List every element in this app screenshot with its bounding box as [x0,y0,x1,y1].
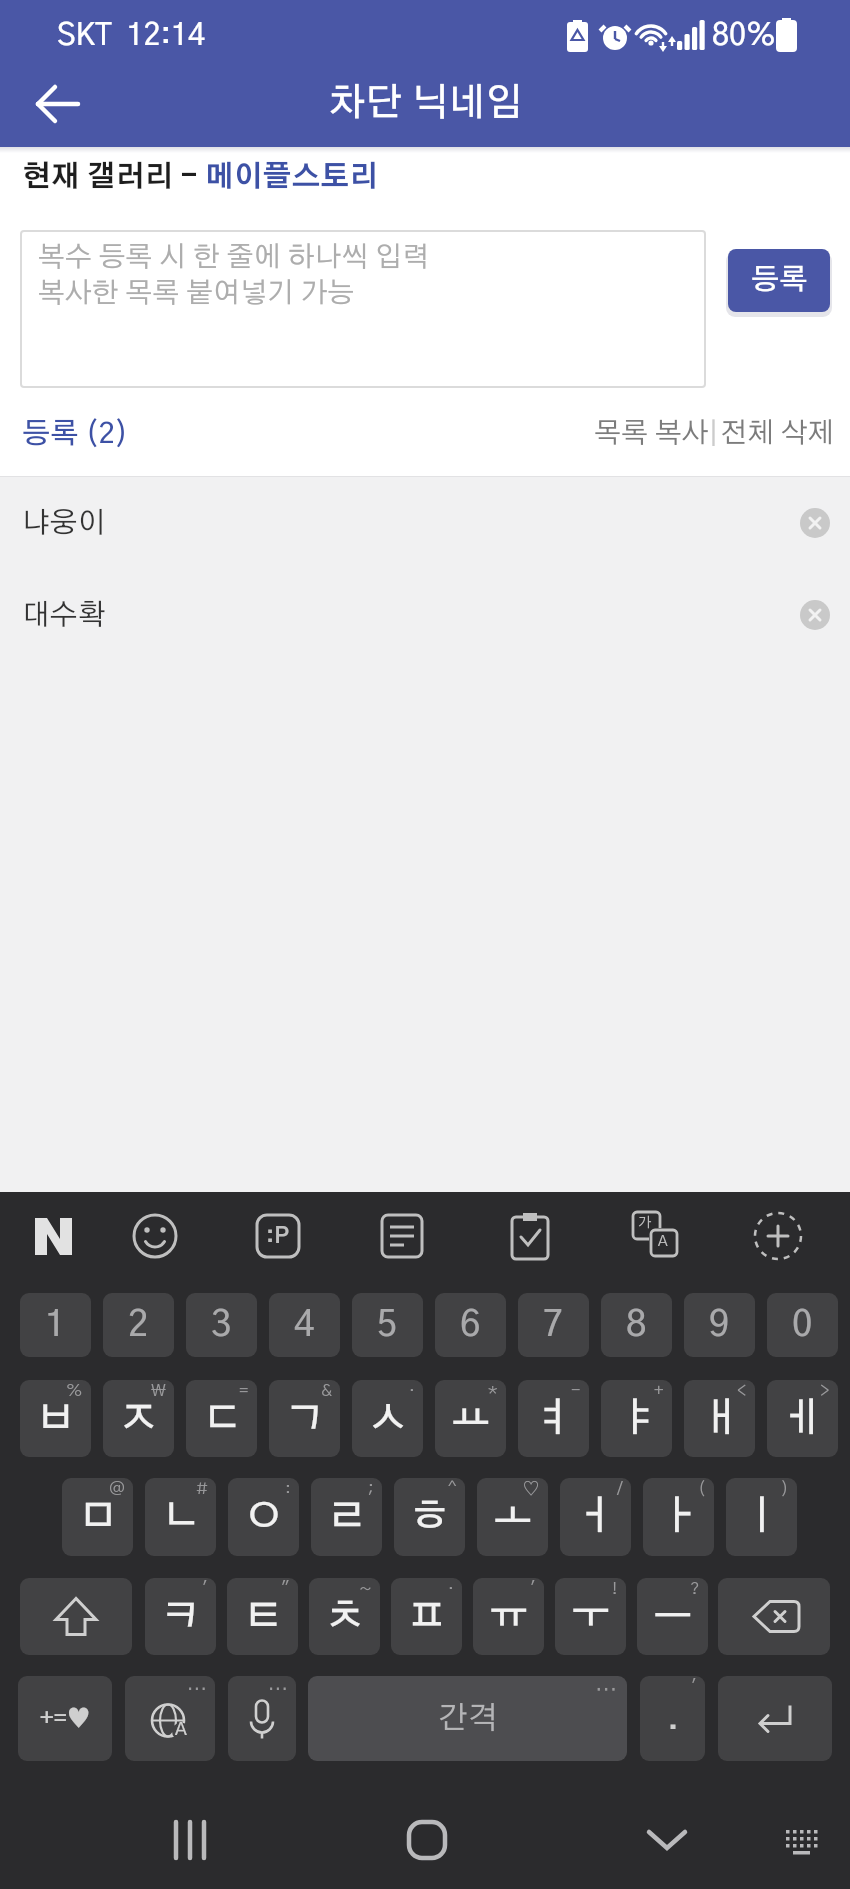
button[interactable]: 5 [352,1293,423,1357]
button[interactable]: ㅑ [601,1380,672,1457]
staticText: ㅑ [617,1399,657,1439]
staticText: - [571,1382,581,1399]
staticText: ㅛ [451,1399,491,1439]
button[interactable]: 0 [767,1293,838,1357]
button[interactable] [20,66,96,142]
staticText: ㅕ [534,1399,574,1439]
staticText: 복수 등록 시 한 줄에 하나씩 입력 복사한 목록 붙여넣기 가능 [38,244,429,308]
staticText: % [66,1382,83,1399]
button[interactable]: ㅇ [228,1478,299,1556]
button[interactable]: ㅅ [352,1380,423,1457]
button[interactable]: ㅓ [560,1478,631,1556]
button[interactable]: ㄱ [269,1380,340,1457]
staticText: · [448,1580,454,1597]
staticText: & [321,1382,332,1399]
button[interactable]: 9 [684,1293,755,1357]
staticText: ⋯ [187,1676,207,1699]
button[interactable]: ㅕ [518,1380,589,1457]
staticText: ㄴ [161,1497,201,1537]
button[interactable]: ㅊ [309,1578,380,1655]
button[interactable]: 2 [103,1293,174,1357]
button[interactable]: ㅂ [20,1380,91,1457]
button[interactable] [499,1205,561,1267]
button[interactable]: 1 [20,1293,91,1357]
button[interactable]: ㅈ [103,1380,174,1457]
staticText: ㅜ [571,1597,611,1637]
staticText: 7 [543,1307,564,1343]
button[interactable]: ㅡ [637,1578,708,1655]
button[interactable] [20,1578,132,1655]
button[interactable]: ㅛ [435,1380,506,1457]
staticText: ㅇ [244,1497,284,1537]
staticText: 등록 (2) [22,420,129,449]
button[interactable]: ㅜ [555,1578,626,1655]
staticText: ₩ [151,1382,166,1399]
staticText: 80% [712,21,776,51]
staticText: ㅋ [161,1597,201,1637]
button[interactable]: ㅔ [767,1380,838,1457]
staticText: 4 [294,1307,315,1343]
button[interactable]: ㅎ [394,1478,465,1556]
button[interactable] [22,1205,84,1267]
button[interactable]: ㄴ [145,1478,216,1556]
staticText: ㅔ [783,1399,823,1439]
button[interactable]: ⋯ [228,1676,296,1761]
button[interactable] [371,1205,433,1267]
button[interactable] [718,1578,830,1655]
button[interactable]: ㄷ [186,1380,257,1457]
button[interactable]: 6 [435,1293,506,1357]
button[interactable]: 냐웅이 [0,477,850,569]
staticText: 0 [792,1307,813,1343]
staticText: ㄹ [327,1497,367,1537]
staticText: ! [612,1580,618,1597]
button[interactable]: 메이플스토리 [205,163,379,192]
button[interactable]: 등록 [728,249,830,312]
staticText: 현재 갤러리 - [22,163,205,192]
staticText: :P [266,1225,290,1247]
staticText: 9 [709,1307,730,1343]
button[interactable]: 간격 [308,1676,627,1761]
button[interactable] [747,1205,809,1267]
button[interactable]: ㅗ [477,1478,548,1556]
button[interactable]: 목록 복사 [592,412,710,456]
button[interactable]: 4 [269,1293,340,1357]
button[interactable]: 가 [624,1205,686,1267]
staticText: 대수확 [22,601,106,630]
staticText: 1 [45,1307,66,1343]
staticText: 냐웅이 [22,509,106,538]
button[interactable] [800,508,830,538]
button[interactable]: ㅐ [684,1380,755,1457]
button[interactable]: 8 [601,1293,672,1357]
button[interactable]: ㄹ [311,1478,382,1556]
button[interactable]: ㅣ [726,1478,797,1556]
staticText: 전체 삭제 [720,420,835,448]
staticText: ; [368,1480,374,1497]
button[interactable]: ㅌ [227,1578,298,1655]
staticText: ㅅ [368,1399,408,1439]
staticText: 3 [211,1307,232,1343]
button[interactable] [124,1205,186,1267]
button[interactable]: ㅁ [62,1478,133,1556]
button[interactable]: ㅍ [391,1578,462,1655]
button[interactable]: 전체 삭제 [718,412,836,456]
button[interactable]: 대수확 [0,569,850,661]
button[interactable]: 7 [518,1293,589,1357]
staticText: ? [690,1580,700,1597]
staticText: 5 [377,1307,398,1343]
staticText: A [658,1234,668,1249]
button[interactable]: ㅋ [145,1578,216,1655]
staticText: 목록 복사 [594,420,709,448]
staticText: ㅂ [36,1399,76,1439]
button[interactable]: . [640,1676,705,1761]
button[interactable]: +=♥ [18,1676,112,1761]
staticText: ㅈ [119,1399,159,1439]
button[interactable]: A [125,1676,215,1761]
button[interactable]: ㅏ [643,1478,714,1556]
button[interactable]: ㅠ [473,1578,544,1655]
staticText: ㄱ [285,1399,325,1439]
button[interactable]: 3 [186,1293,257,1357]
staticText: # [196,1480,208,1497]
button[interactable] [800,600,830,630]
button[interactable]: :P [247,1205,309,1267]
button[interactable] [718,1676,832,1761]
